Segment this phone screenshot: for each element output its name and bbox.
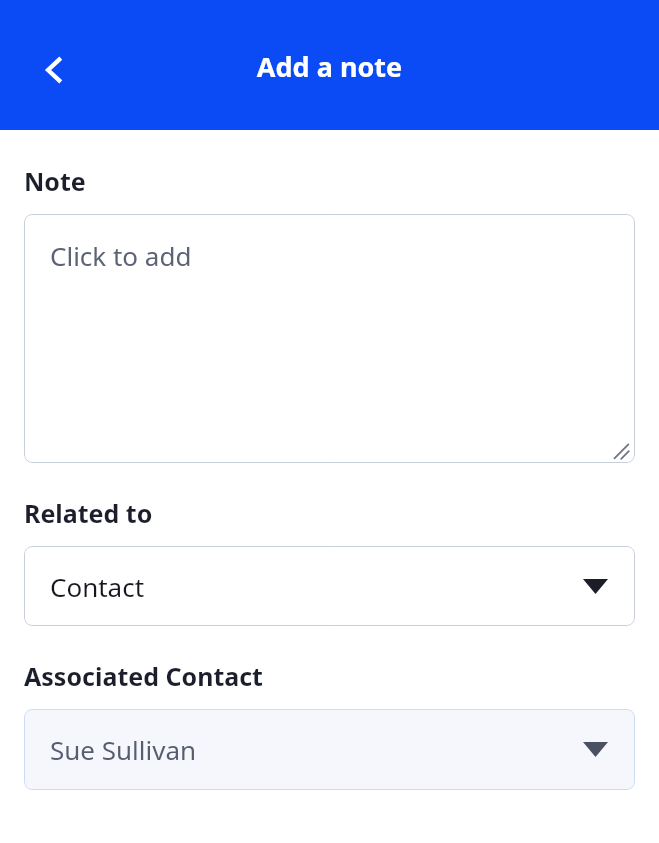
staticText: Contact: [50, 569, 145, 604]
button[interactable]: Sue Sullivan: [24, 709, 635, 790]
button[interactable]: Back: [26, 42, 82, 98]
button[interactable]: Contact: [24, 546, 635, 626]
button[interactable]: Click to add: [24, 214, 635, 463]
staticText: Note: [24, 164, 86, 198]
staticText: Associated Contact: [24, 659, 263, 693]
staticText: Add a note: [0, 48, 659, 85]
staticText: Related to: [24, 496, 153, 530]
staticText: Sue Sullivan: [50, 732, 197, 767]
staticText: Click to add: [50, 238, 192, 273]
